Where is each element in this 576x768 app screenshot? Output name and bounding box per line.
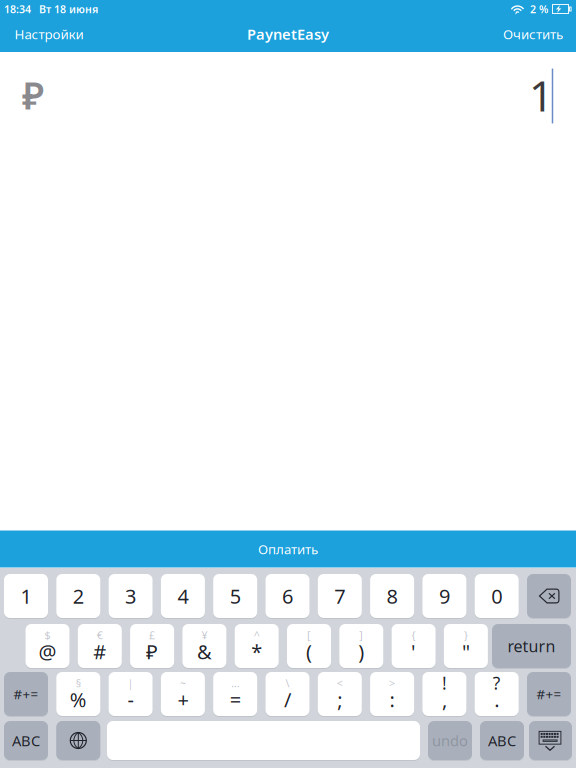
- staticText: ^: [254, 628, 260, 642]
- staticText: $: [44, 628, 50, 642]
- button[interactable]: undo: [428, 721, 472, 760]
- staticText: …: [231, 676, 239, 690]
- staticText: <: [337, 676, 343, 690]
- staticText: #: [93, 638, 106, 665]
- button[interactable]: ?: [475, 672, 519, 716]
- button[interactable]: 6: [265, 574, 309, 618]
- button[interactable]: 3: [109, 574, 153, 618]
- staticText: {: [412, 628, 416, 642]
- staticText: ABC: [488, 731, 516, 750]
- button[interactable]: Оплатить: [0, 530, 576, 567]
- button[interactable]: Next keyboard: [56, 721, 100, 760]
- button[interactable]: 5: [213, 574, 257, 618]
- staticText: ~: [180, 676, 186, 690]
- button[interactable]: ¥: [182, 624, 226, 668]
- button[interactable]: 8: [370, 574, 414, 618]
- button[interactable]: <: [318, 672, 362, 716]
- staticText: ,: [442, 686, 447, 713]
- button[interactable]: return: [492, 624, 571, 668]
- staticText: ¥: [201, 628, 207, 642]
- button[interactable]: ]: [339, 624, 383, 668]
- staticText: &: [197, 638, 212, 665]
- button[interactable]: 1: [4, 574, 48, 618]
- staticText: *: [251, 638, 262, 665]
- staticText: 18:34: [4, 2, 31, 16]
- button[interactable]: {: [392, 624, 436, 668]
- staticText: >: [389, 676, 395, 690]
- staticText: Настройки: [14, 25, 83, 43]
- staticText: ₽: [146, 638, 158, 665]
- button[interactable]: Очистить: [488, 19, 576, 49]
- button[interactable]: >: [370, 672, 414, 716]
- staticText: ): [358, 638, 364, 665]
- staticText: 7: [334, 583, 345, 609]
- staticText: 4: [177, 583, 188, 609]
- button[interactable]: …: [213, 672, 257, 716]
- staticText: .: [494, 686, 499, 713]
- staticText: ;: [337, 686, 342, 713]
- staticText: 3: [125, 583, 136, 609]
- button[interactable]: ^: [235, 624, 279, 668]
- button[interactable]: $: [25, 624, 69, 668]
- staticText: Вт 18 июня: [39, 2, 98, 16]
- staticText: }: [464, 628, 468, 642]
- button[interactable]: [: [287, 624, 331, 668]
- staticText: ': [411, 638, 416, 665]
- staticText: ABC: [12, 731, 40, 750]
- button[interactable]: §: [56, 672, 100, 716]
- button[interactable]: 0: [475, 574, 519, 618]
- staticText: 9: [439, 583, 450, 609]
- button[interactable]: #+=: [527, 672, 571, 716]
- staticText: ?: [493, 671, 501, 694]
- staticText: undo: [432, 731, 468, 750]
- staticText: 2 %: [530, 2, 548, 16]
- button[interactable]: 4: [161, 574, 205, 618]
- button[interactable]: ABC: [4, 721, 48, 760]
- staticText: 5: [230, 583, 241, 609]
- staticText: 2: [73, 583, 84, 609]
- staticText: £: [149, 628, 155, 642]
- staticText: return: [507, 635, 555, 657]
- staticText: =: [230, 686, 241, 713]
- staticText: @: [38, 638, 56, 665]
- staticText: \: [285, 676, 289, 690]
- button[interactable]: 9: [422, 574, 466, 618]
- staticText: #+=: [13, 685, 38, 703]
- staticText: !: [442, 671, 447, 694]
- button[interactable]: }: [444, 624, 488, 668]
- button[interactable]: ABC: [480, 721, 524, 760]
- button[interactable]: 7: [318, 574, 362, 618]
- staticText: PaynetEasy: [247, 24, 329, 44]
- button[interactable]: Delete: [527, 574, 571, 618]
- button[interactable]: €: [78, 624, 122, 668]
- staticText: +: [177, 686, 188, 713]
- staticText: ": [462, 638, 470, 665]
- button[interactable]: £: [130, 624, 174, 668]
- staticText: (: [306, 638, 312, 665]
- staticText: 8: [387, 583, 398, 609]
- button[interactable]: \: [265, 672, 309, 716]
- staticText: €: [97, 628, 103, 642]
- button[interactable]: !: [422, 672, 466, 716]
- button[interactable]: Настройки: [0, 19, 99, 49]
- staticText: /: [284, 686, 291, 713]
- button[interactable]: Dismiss keyboard: [529, 721, 572, 760]
- staticText: 6: [282, 583, 293, 609]
- staticText: -: [128, 686, 134, 713]
- staticText: Очистить: [503, 25, 563, 43]
- staticText: Оплатить: [258, 540, 318, 558]
- staticText: 0: [491, 583, 502, 609]
- staticText: :: [390, 686, 395, 713]
- button[interactable]: |: [109, 672, 153, 716]
- staticText: §: [76, 676, 81, 690]
- button[interactable]: #+=: [4, 672, 48, 716]
- staticText: ₽: [22, 70, 44, 120]
- staticText: %: [70, 686, 87, 713]
- staticText: #+=: [536, 685, 561, 703]
- button[interactable]: ~: [161, 672, 205, 716]
- staticText: 1: [529, 67, 553, 123]
- button[interactable]: 2: [56, 574, 100, 618]
- staticText: 1: [20, 583, 31, 609]
- staticText: |: [128, 676, 134, 690]
